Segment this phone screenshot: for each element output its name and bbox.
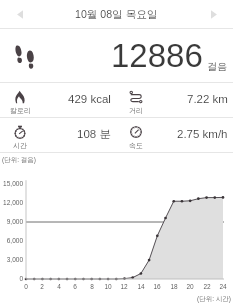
staticText: 8 <box>84 283 100 290</box>
staticText: 2 <box>34 283 50 290</box>
button[interactable]: 시간 <box>0 118 116 152</box>
button[interactable]: 칼로리 <box>0 83 116 117</box>
staticText: 9,000 <box>0 218 23 225</box>
staticText: 18 <box>166 283 182 290</box>
staticText: 시간 <box>13 141 27 150</box>
staticText: 22 <box>199 283 215 290</box>
staticText: 12886 <box>111 37 203 74</box>
staticText: 2.75 km/h <box>177 128 228 141</box>
button[interactable]: 거리 <box>116 83 233 117</box>
staticText: 3,000 <box>0 256 23 263</box>
button[interactable]: Previous day <box>0 0 40 28</box>
staticText: 429 kcal <box>68 93 111 106</box>
staticText: 거리 <box>129 106 143 115</box>
staticText: 4 <box>51 283 67 290</box>
staticText: 16 <box>149 283 165 290</box>
staticText: 칼로리 <box>10 106 31 115</box>
staticText: 0 <box>18 283 34 290</box>
staticText: 6 <box>67 283 83 290</box>
staticText: 속도 <box>129 141 143 150</box>
staticText: 6,000 <box>0 237 23 244</box>
staticText: 12,000 <box>0 199 23 206</box>
staticText: 14 <box>133 283 149 290</box>
staticText: 걸음 <box>207 60 227 73</box>
staticText: 15,000 <box>0 180 23 187</box>
staticText: 20 <box>182 283 198 290</box>
button[interactable]: 속도 <box>116 118 233 152</box>
button[interactable]: Next day <box>193 0 233 28</box>
staticText: 24 <box>215 283 231 290</box>
staticText: 0 <box>0 275 23 282</box>
staticText: 108 분 <box>77 127 111 141</box>
staticText: 7.22 km <box>187 93 228 106</box>
staticText: 12 <box>116 283 132 290</box>
staticText: (단위: 걸음) <box>2 156 36 164</box>
staticText: (단위: 시간) <box>197 295 231 303</box>
staticText: 10월 08일 목요일 <box>75 8 158 21</box>
button[interactable]: 12886 <box>0 29 233 82</box>
staticText: 10 <box>100 283 116 290</box>
